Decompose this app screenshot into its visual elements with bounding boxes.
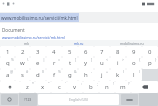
button[interactable]: Emoji xyxy=(1,94,18,105)
staticText: [ xyxy=(75,57,77,62)
button[interactable]: Space xyxy=(38,94,119,105)
button[interactable]: b xyxy=(83,81,99,93)
staticText: x xyxy=(41,83,45,91)
staticText: { xyxy=(139,57,141,62)
staticText: t xyxy=(69,59,72,67)
staticText: 0 xyxy=(148,48,152,56)
button[interactable]: 9 xyxy=(126,46,142,57)
staticText: & xyxy=(74,69,77,74)
button[interactable]: m xyxy=(115,81,131,93)
staticText: English (US) xyxy=(69,97,88,102)
staticText: ( xyxy=(123,69,125,74)
staticText: 6 xyxy=(84,48,88,56)
button[interactable]: s xyxy=(15,69,30,81)
staticText: : xyxy=(81,81,82,86)
button[interactable]: y xyxy=(78,57,94,69)
staticText: f xyxy=(53,71,56,79)
staticText: e xyxy=(36,59,40,67)
staticText: ? xyxy=(128,81,130,86)
staticText: 7 xyxy=(100,48,104,56)
button[interactable]: 0 xyxy=(142,46,158,57)
staticText: h xyxy=(84,71,88,79)
button[interactable]: Backspace xyxy=(131,81,158,93)
staticText: g xyxy=(68,71,72,79)
button[interactable]: a xyxy=(0,69,15,81)
staticText: r xyxy=(53,59,56,67)
button[interactable]: 1 xyxy=(0,46,15,57)
button[interactable]: f xyxy=(46,69,62,81)
button[interactable]: c xyxy=(51,81,67,93)
button[interactable]: j xyxy=(94,69,110,81)
staticText: l xyxy=(133,71,135,79)
button[interactable]: p xyxy=(142,57,158,69)
staticText: j xyxy=(101,71,103,79)
staticText: i xyxy=(117,59,119,67)
staticText: 5 xyxy=(68,48,72,56)
staticText: w xyxy=(20,59,25,67)
button[interactable]: 8 xyxy=(110,46,126,57)
staticText: www.mobilissimo.ru/servicii/mk.html xyxy=(1,15,78,21)
staticText: mk xyxy=(24,41,29,46)
button[interactable]: Document xyxy=(0,23,158,40)
staticText: ! xyxy=(113,81,114,86)
staticText: # xyxy=(26,69,29,74)
button[interactable]: 4 xyxy=(46,46,62,57)
staticText: y xyxy=(84,59,88,67)
button[interactable]: Go xyxy=(121,94,138,105)
button[interactable]: n xyxy=(99,81,115,93)
button[interactable]: o xyxy=(126,57,142,69)
button[interactable]: d xyxy=(30,69,46,81)
staticText: mobilissimo.ru xyxy=(120,41,144,46)
staticText: m xyxy=(120,83,126,91)
staticText: Document xyxy=(2,27,25,33)
button[interactable]: 2 xyxy=(15,46,30,57)
button[interactable]: x xyxy=(35,81,51,93)
button[interactable]: www.mobilissimo.ru/servicii/mk.html xyxy=(0,13,79,22)
staticText: ; xyxy=(97,81,98,86)
button[interactable]: 6 xyxy=(78,46,94,57)
staticText: 3 xyxy=(36,48,40,56)
staticText: % xyxy=(11,57,14,62)
button[interactable]: i xyxy=(110,57,126,69)
button[interactable]: mobilissimo.ru xyxy=(105,40,158,46)
button[interactable]: mk xyxy=(0,40,52,46)
button[interactable]: k xyxy=(110,69,126,81)
staticText: ' xyxy=(65,81,66,86)
staticText: @ xyxy=(10,69,14,74)
button[interactable]: q xyxy=(0,57,15,69)
staticText: 8 xyxy=(116,48,120,56)
staticText: 1 xyxy=(6,48,10,56)
button[interactable]: l xyxy=(126,69,142,81)
button[interactable]: e xyxy=(30,57,46,69)
staticText: c xyxy=(58,83,61,91)
button[interactable]: h xyxy=(78,69,94,81)
staticText: | xyxy=(43,57,45,62)
staticText: n xyxy=(105,83,109,91)
staticText: 9 xyxy=(132,48,136,56)
staticText: 2 xyxy=(21,48,25,56)
button[interactable]: r xyxy=(46,57,62,69)
staticText: k xyxy=(116,71,120,79)
button[interactable]: z xyxy=(20,81,35,93)
staticText: \ xyxy=(27,57,29,62)
staticText: ?123 xyxy=(24,97,32,102)
staticText: $ xyxy=(42,69,45,74)
button[interactable]: v xyxy=(67,81,83,93)
staticText: b xyxy=(89,83,93,91)
staticText: < xyxy=(106,57,109,62)
button[interactable]: mk.ru xyxy=(52,40,105,46)
staticText: mk.ru xyxy=(74,41,84,46)
staticText: 4 xyxy=(52,48,56,56)
staticText: } xyxy=(155,57,157,62)
button[interactable]: t xyxy=(62,57,78,69)
button[interactable]: Shift xyxy=(0,81,20,93)
button[interactable]: w xyxy=(15,57,30,69)
button[interactable]: ?123 xyxy=(19,93,37,106)
button[interactable]: 3 xyxy=(30,46,46,57)
button[interactable]: u xyxy=(94,57,110,69)
button[interactable]: 7 xyxy=(94,46,110,57)
staticText: q xyxy=(6,59,10,67)
button[interactable]: 5 xyxy=(62,46,78,57)
button[interactable]: g xyxy=(62,69,78,81)
